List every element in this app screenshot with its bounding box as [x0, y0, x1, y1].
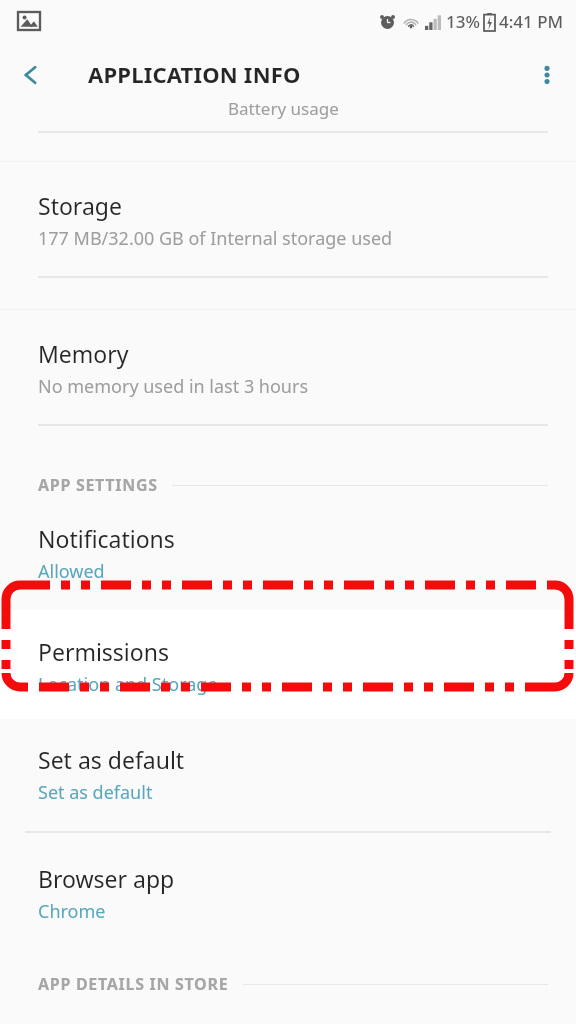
staticText: 13%	[446, 10, 480, 33]
staticText: Battery usage	[228, 97, 339, 120]
staticText: Notifications	[38, 523, 175, 554]
staticText: Set as default	[38, 744, 185, 775]
staticText: APP SETTINGS	[38, 474, 158, 496]
button[interactable]: Set as default	[0, 719, 576, 831]
staticText: Chrome	[38, 899, 106, 924]
staticText: Storage	[38, 190, 122, 221]
staticText: Permissions	[38, 636, 169, 667]
button[interactable]: Storage	[0, 162, 576, 276]
staticText: 177 MB/32.00 GB of Internal storage used	[38, 226, 393, 251]
staticText: Location and Storage	[38, 672, 218, 697]
button[interactable]: Memory	[0, 310, 576, 424]
staticText: Memory	[38, 338, 129, 369]
staticText: No memory used in last 3 hours	[38, 374, 309, 399]
staticText: APP DETAILS IN STORE	[38, 973, 229, 995]
button[interactable]: Notifications	[0, 496, 576, 584]
button[interactable]: More options	[518, 46, 576, 104]
staticText: Set as default	[38, 780, 153, 805]
staticText: Allowed	[38, 559, 105, 584]
button[interactable]: Browser app	[0, 833, 576, 924]
button[interactable]: Navigate up	[0, 44, 62, 106]
button[interactable]: Permissions	[0, 610, 576, 719]
staticText: APPLICATION INFO	[88, 59, 301, 89]
staticText: 4:41 PM	[499, 10, 564, 33]
staticText: Browser app	[38, 863, 175, 894]
